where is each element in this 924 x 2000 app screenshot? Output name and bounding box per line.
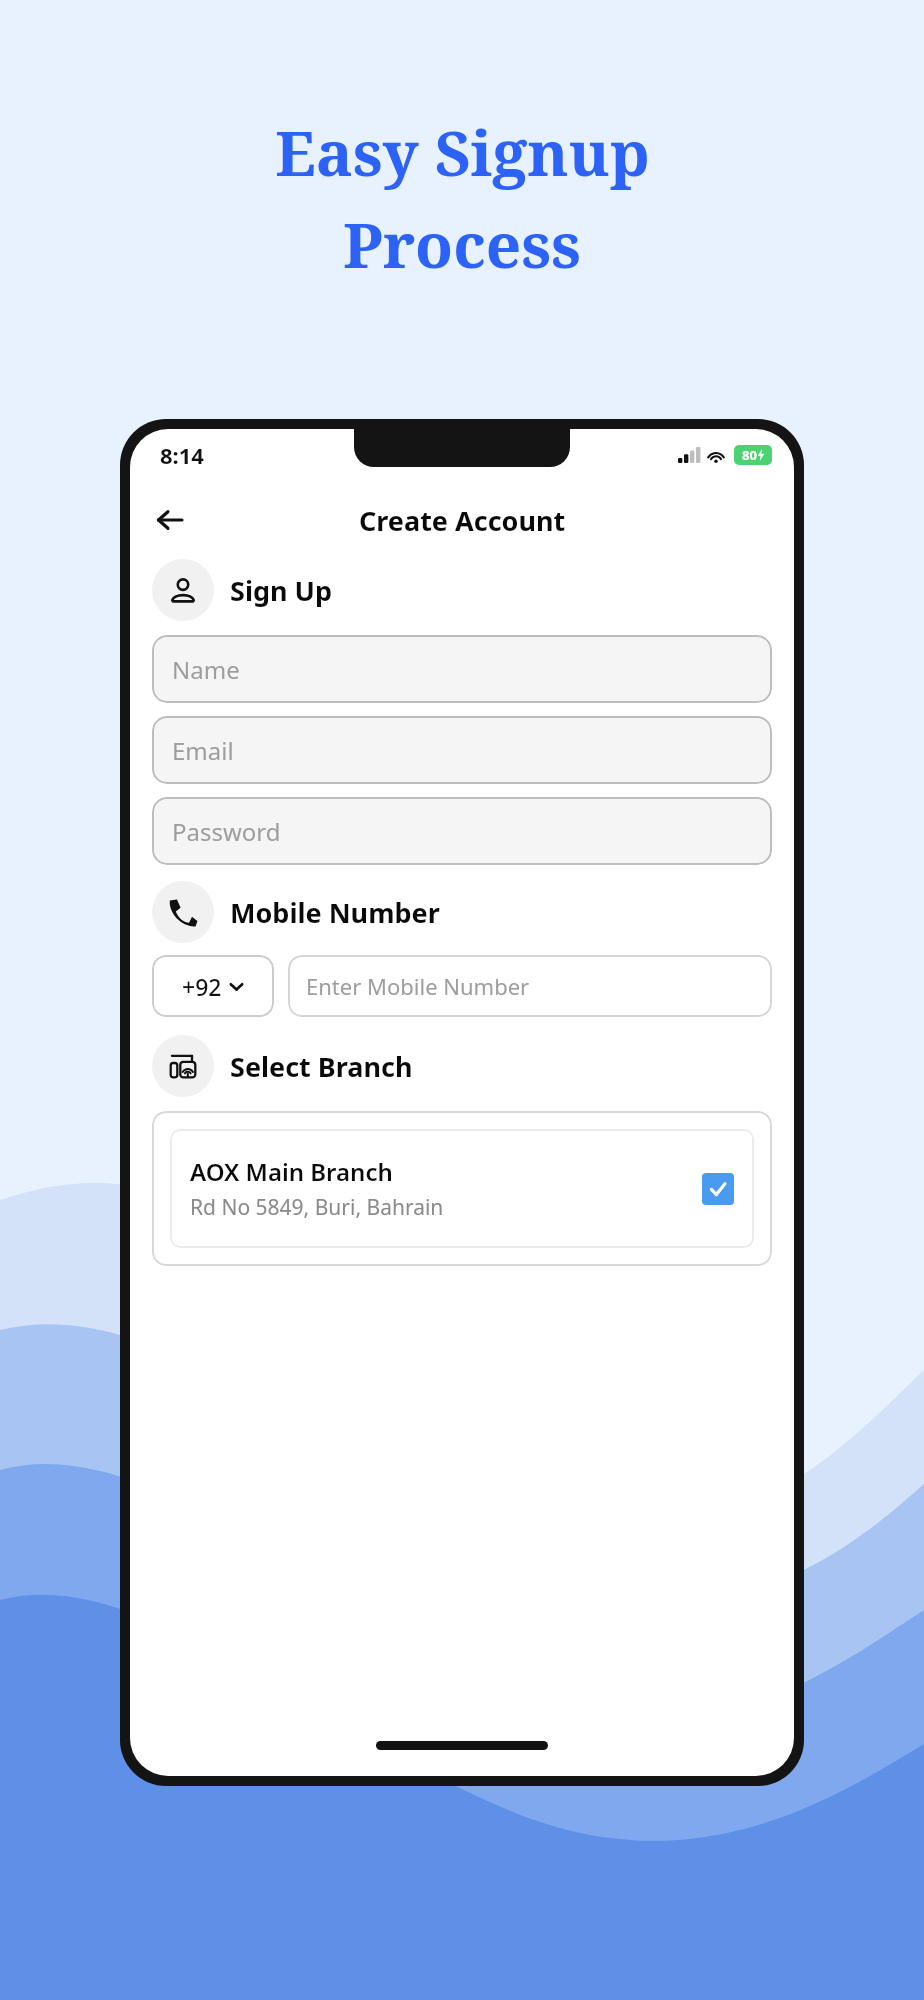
staticText: Enter Mobile Number — [306, 971, 530, 1001]
staticText: Rd No 5849, Buri, Bahrain — [190, 1193, 444, 1222]
staticText: 8:14 — [160, 440, 204, 470]
staticText: 80 — [742, 446, 757, 464]
staticText: Process — [343, 202, 581, 286]
button[interactable]: Email — [152, 716, 772, 784]
staticText: +92 — [182, 971, 222, 1002]
staticText: AOX Main Branch — [190, 1155, 393, 1188]
staticText: Easy Signup — [275, 110, 650, 194]
button[interactable]: AOX Main Branch — [170, 1129, 754, 1248]
button[interactable]: Password — [152, 797, 772, 865]
staticText: Name — [172, 653, 240, 686]
button[interactable]: Enter Mobile Number — [288, 955, 772, 1017]
button[interactable]: +92 — [152, 955, 274, 1017]
staticText: Email — [172, 734, 234, 767]
staticText: Sign Up — [230, 572, 333, 609]
button[interactable]: Name — [152, 635, 772, 703]
staticText: Select Branch — [230, 1048, 413, 1085]
button[interactable]: Back — [146, 496, 194, 544]
staticText: Mobile Number — [230, 894, 440, 931]
staticText: Password — [172, 815, 281, 848]
staticText: Create Account — [359, 502, 566, 539]
